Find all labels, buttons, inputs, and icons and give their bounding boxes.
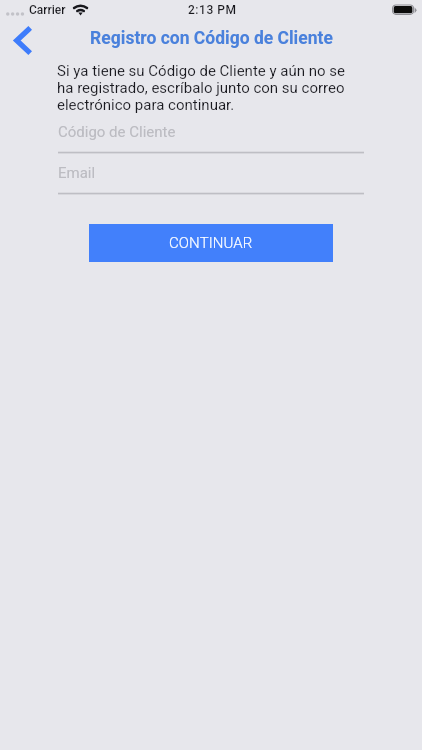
staticText: Registro con Código de Cliente xyxy=(90,28,333,49)
staticText: CONTINUAR xyxy=(169,234,253,252)
staticText: 2:13 PM xyxy=(188,3,237,17)
staticText: Carrier xyxy=(29,3,66,17)
button[interactable]: Back xyxy=(2,23,42,57)
staticText: Email xyxy=(58,164,96,182)
button[interactable]: CONTINUAR xyxy=(89,224,333,262)
staticText: Si ya tiene su Código de Cliente y aún n… xyxy=(57,62,357,113)
staticText: Código de Cliente xyxy=(58,123,176,141)
